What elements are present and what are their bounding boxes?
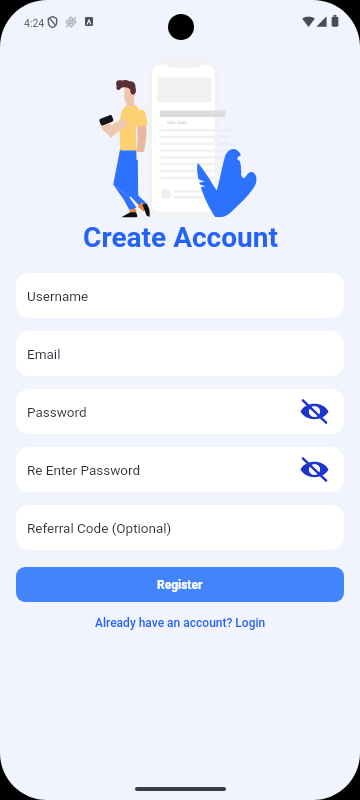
staticText: 4:24	[24, 17, 45, 29]
button[interactable]: Register	[16, 567, 344, 602]
staticText: Register	[157, 578, 203, 592]
staticText: Username	[27, 288, 329, 304]
button[interactable]: Username	[16, 273, 344, 318]
staticText: Re Enter Password	[27, 462, 300, 478]
button[interactable]: Referral Code (Optional)	[16, 505, 344, 550]
button[interactable]: Re Enter Password	[16, 447, 344, 492]
button[interactable]: Email	[16, 331, 344, 376]
staticText: Password	[27, 404, 300, 420]
button[interactable]: Password	[16, 389, 344, 434]
staticText: Referral Code (Optional)	[27, 520, 329, 536]
staticText: Email	[27, 346, 329, 362]
other: Toggle password visibility	[300, 458, 329, 481]
staticText: Create Account	[83, 221, 278, 254]
button[interactable]: Already have an account? Login	[89, 614, 272, 632]
other: Toggle password visibility	[300, 400, 329, 423]
